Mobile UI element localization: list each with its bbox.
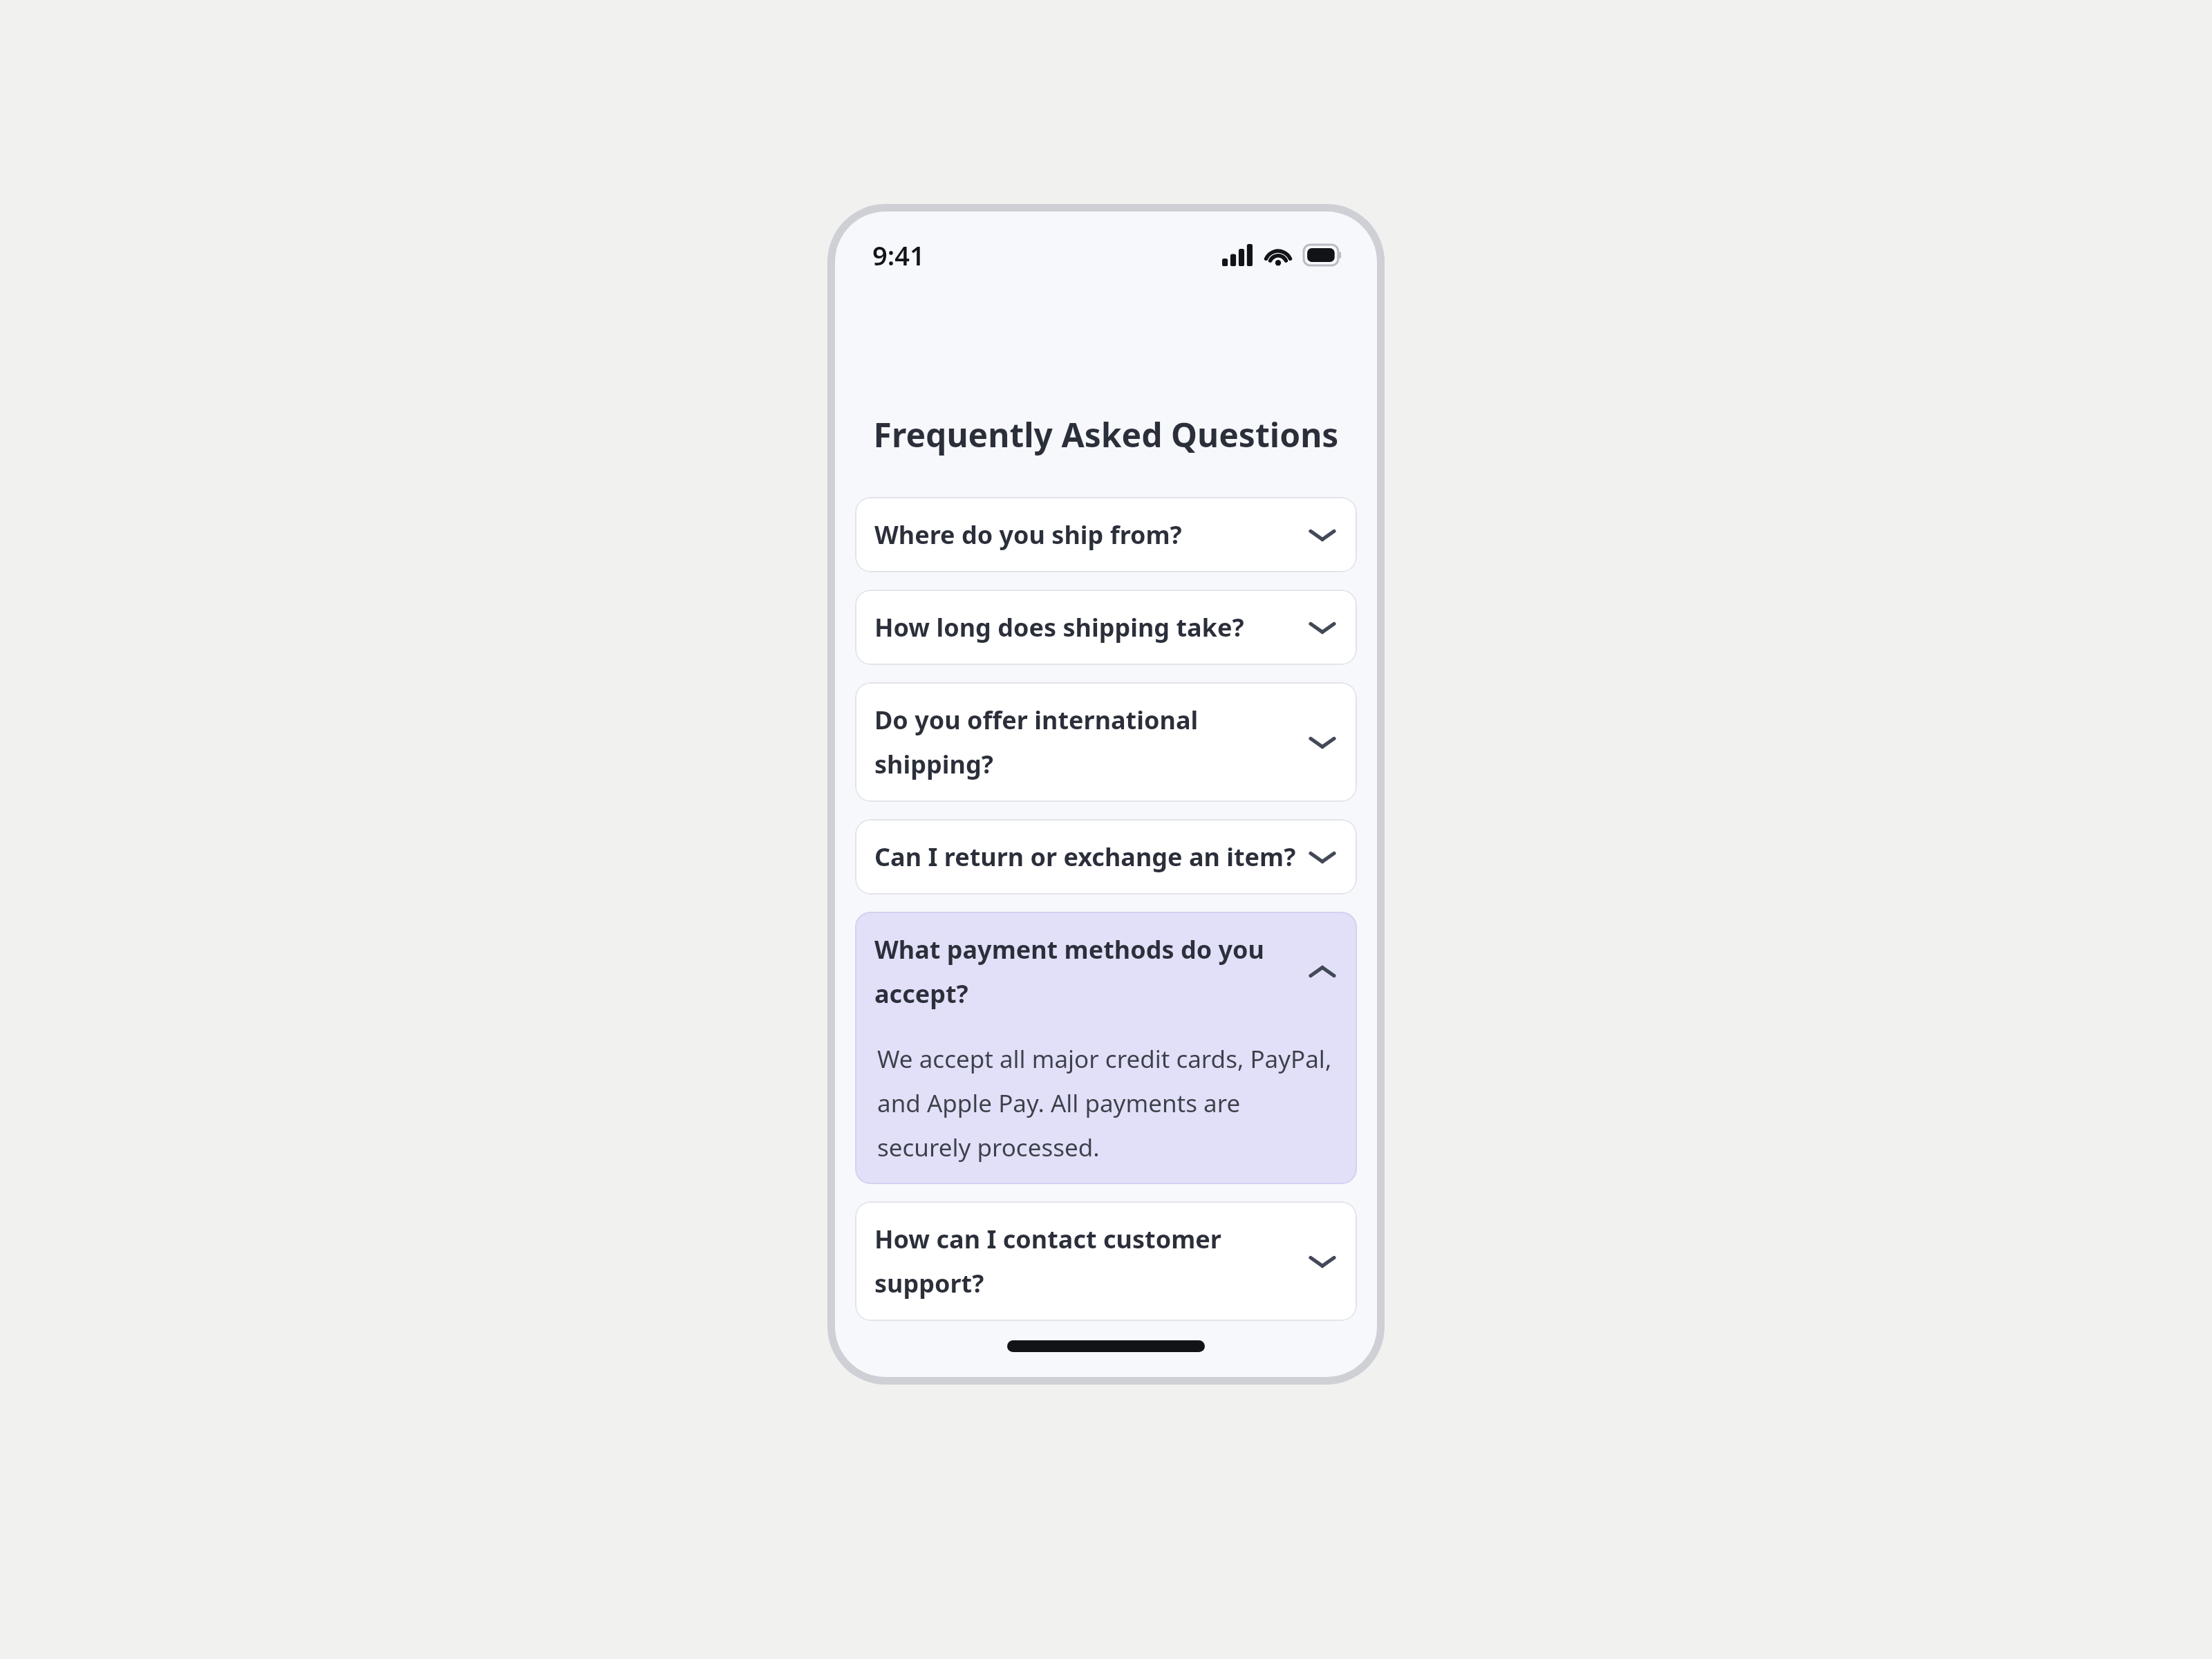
staticText: Do you offer international shipping? bbox=[874, 703, 1296, 781]
staticText: Can I return or exchange an item? bbox=[874, 840, 1296, 874]
button[interactable]: Can I return or exchange an item? bbox=[855, 819, 1357, 894]
staticText: Where do you ship from? bbox=[874, 518, 1296, 552]
other: Collapse bbox=[1307, 957, 1338, 987]
other: Expand bbox=[1307, 842, 1338, 872]
staticText: We accept all major credit cards, PayPal… bbox=[877, 1042, 1338, 1163]
button[interactable]: Where do you ship from? bbox=[855, 497, 1357, 572]
staticText: How can I contact customer support? bbox=[874, 1222, 1296, 1300]
other: Expand bbox=[1307, 612, 1338, 643]
other: Expand bbox=[1307, 1246, 1338, 1277]
other: Expand bbox=[1307, 520, 1338, 550]
staticText: What payment methods do you accept? bbox=[874, 932, 1296, 1011]
staticText: 9:41 bbox=[872, 237, 925, 273]
button[interactable]: How can I contact customer support? bbox=[855, 1201, 1357, 1321]
button[interactable]: What payment methods do you accept? bbox=[855, 912, 1357, 1184]
button[interactable]: How long does shipping take? bbox=[855, 590, 1357, 665]
staticText: Frequently Asked Questions bbox=[852, 412, 1360, 457]
button[interactable]: Do you offer international shipping? bbox=[855, 682, 1357, 802]
other: Expand bbox=[1307, 727, 1338, 758]
staticText: How long does shipping take? bbox=[874, 610, 1296, 644]
